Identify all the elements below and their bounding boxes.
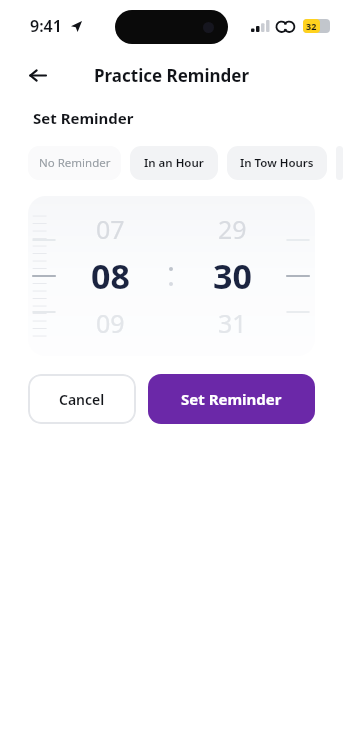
staticText: 31 — [218, 306, 247, 340]
staticText: In Tow Hours — [240, 155, 314, 171]
button[interactable]: Set Reminder — [148, 374, 315, 424]
button[interactable]: No Reminder — [28, 146, 121, 180]
button[interactable]: Back — [20, 58, 54, 92]
staticText: Cancel — [59, 390, 105, 409]
staticText: 07 — [96, 212, 125, 246]
button[interactable]: 29 — [184, 212, 281, 340]
staticText: 30 — [213, 253, 252, 299]
button[interactable]: In Tow Hours — [227, 146, 327, 180]
button[interactable]: Cancel — [28, 374, 136, 424]
staticText: No Reminder — [39, 155, 111, 171]
staticText: 9:41 — [30, 15, 62, 37]
staticText: 08 — [91, 253, 130, 299]
staticText: Practice Reminder — [94, 64, 250, 87]
staticText: In an Hour — [144, 155, 204, 171]
staticText: Set Reminder — [33, 108, 134, 128]
staticText: Set Reminder — [181, 389, 282, 409]
button[interactable]: 07 — [62, 212, 158, 340]
staticText: 32 — [306, 20, 317, 32]
staticText: 29 — [218, 212, 247, 246]
staticText: 09 — [96, 306, 125, 340]
button[interactable]: In an Hour — [130, 146, 218, 180]
